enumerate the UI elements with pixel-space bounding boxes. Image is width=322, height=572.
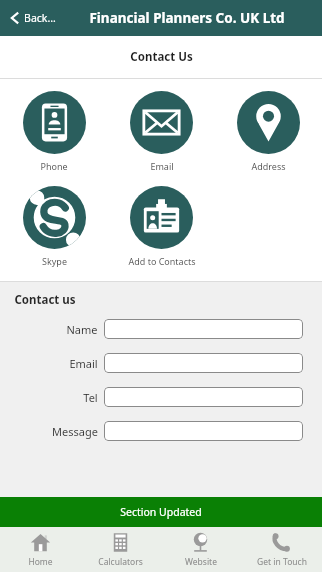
staticText: Website (185, 556, 217, 568)
staticText: Contact Us (130, 49, 193, 65)
button[interactable]: Phone (0, 91, 108, 172)
button[interactable]: Address (215, 91, 322, 172)
staticText: Section Updated (120, 505, 202, 519)
button[interactable]: Skype (0, 186, 108, 267)
staticText: Add to Contacts (128, 255, 196, 267)
staticText: Name (66, 322, 98, 337)
staticText: Back... (24, 11, 56, 25)
button[interactable]: Calculators (80, 527, 160, 572)
staticText: Message (52, 424, 98, 439)
button[interactable]: Get in Touch (241, 527, 322, 572)
staticText: Get in Touch (257, 556, 307, 568)
staticText: Phone (40, 160, 68, 172)
button[interactable]: Website (160, 527, 241, 572)
staticText: Financial Planners Co. UK Ltd (89, 9, 285, 27)
staticText: Email (69, 356, 98, 371)
staticText: Home (28, 556, 53, 568)
staticText: Skype (42, 255, 67, 267)
button[interactable] (104, 421, 303, 441)
staticText: Contact us (14, 292, 76, 308)
button[interactable]: Home (0, 527, 80, 572)
staticText: Address (251, 160, 286, 172)
button[interactable] (104, 353, 303, 373)
staticText: Calculators (98, 556, 143, 568)
button[interactable]: Email (108, 91, 215, 172)
button[interactable]: Back... (8, 6, 58, 30)
button[interactable] (104, 319, 303, 339)
button[interactable] (104, 387, 303, 407)
button[interactable]: Add to Contacts (108, 186, 215, 267)
staticText: Tel (83, 390, 98, 405)
staticText: Email (150, 160, 174, 172)
